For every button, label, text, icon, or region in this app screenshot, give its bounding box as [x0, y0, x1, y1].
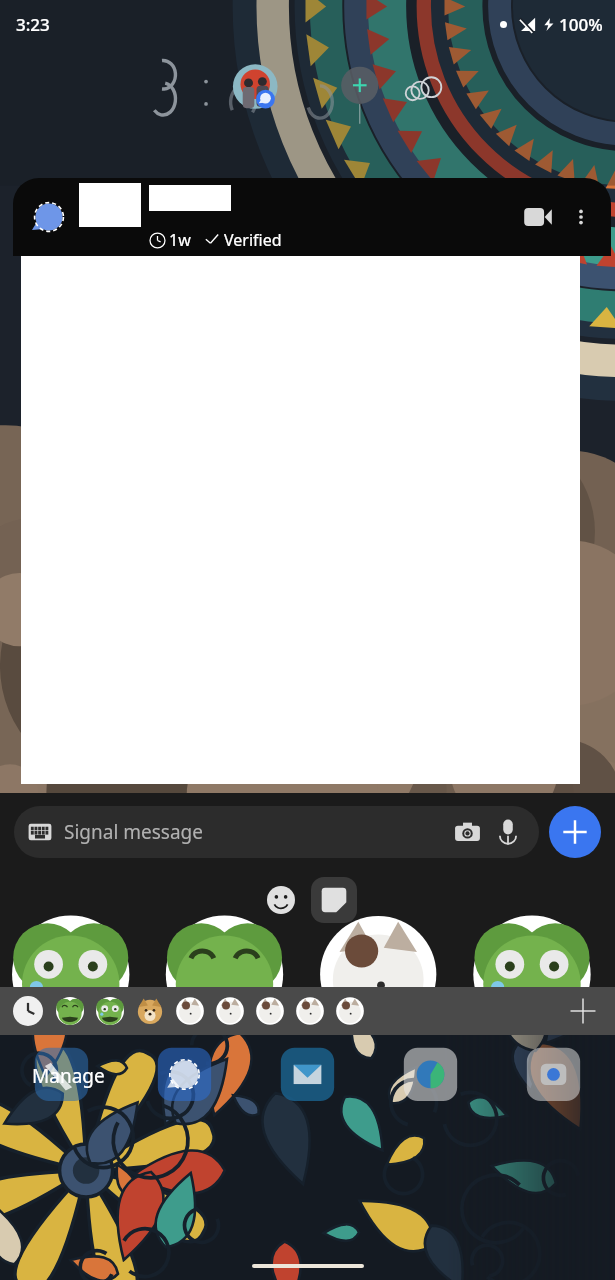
- button[interactable]: Sticker pack: [290, 991, 330, 1031]
- button[interactable]: Contact avatar: [27, 195, 71, 239]
- button[interactable]: Voice message: [491, 815, 525, 849]
- staticText: Signal message: [64, 819, 449, 845]
- button[interactable]: Recent stickers: [6, 989, 50, 1033]
- button[interactable]: Add sticker pack: [561, 989, 605, 1033]
- button[interactable]: Sticker pack: [90, 991, 130, 1031]
- staticText: 3:23: [16, 13, 50, 36]
- button[interactable]: Signal message: [14, 806, 539, 858]
- button[interactable]: Stickers: [311, 877, 357, 923]
- button[interactable]: Sticker pack: [130, 991, 170, 1031]
- button[interactable]: Video call: [515, 194, 561, 240]
- button[interactable]: Sticker pack: [330, 991, 370, 1031]
- button[interactable]: Sticker pack: [170, 991, 210, 1031]
- button[interactable]: Sticker pack: [210, 991, 250, 1031]
- staticText: 1w: [169, 229, 191, 251]
- button[interactable]: Sticker pack: [250, 991, 290, 1031]
- staticText: 100%: [559, 13, 603, 36]
- button[interactable]: More options: [561, 197, 601, 237]
- button[interactable]: Add attachment: [549, 806, 601, 858]
- button[interactable]: Sticker pack: [50, 991, 90, 1031]
- button[interactable]: Emoji: [259, 878, 303, 922]
- staticText: Verified: [224, 229, 282, 251]
- button[interactable]: Camera: [449, 814, 485, 850]
- staticText: Manage: [32, 1063, 105, 1089]
